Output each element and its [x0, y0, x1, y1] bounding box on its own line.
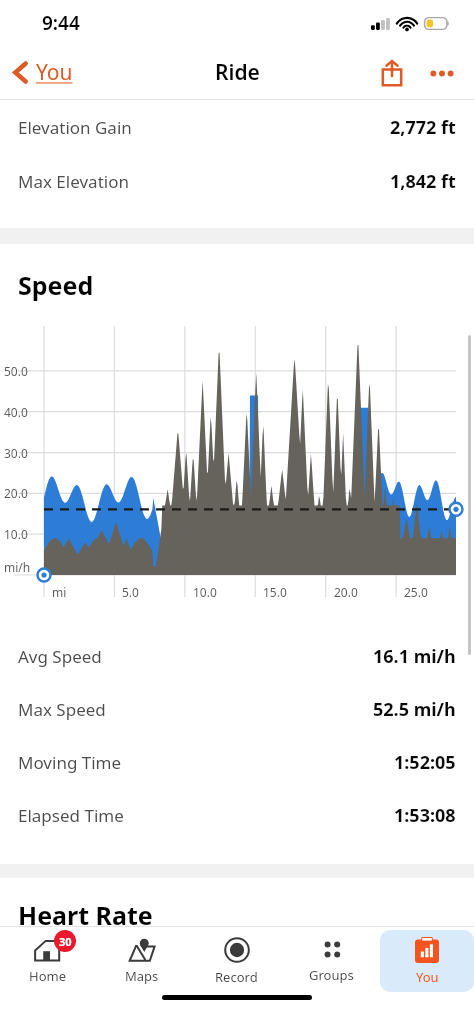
- staticText: 9:44: [42, 10, 80, 36]
- staticText: 1:53:08: [394, 803, 456, 828]
- staticText: 30.0: [4, 445, 28, 461]
- button[interactable]: Groups: [309, 939, 354, 984]
- button[interactable]: Moving Time: [0, 736, 474, 789]
- button[interactable]: Max Elevation: [0, 154, 474, 208]
- staticText: 52.5 mi/h: [373, 697, 456, 722]
- staticText: 50.0: [4, 363, 28, 379]
- staticText: 20.0: [334, 584, 358, 600]
- staticText: Elapsed Time: [18, 804, 124, 827]
- staticText: mi: [52, 584, 67, 600]
- staticText: Avg Speed: [18, 645, 102, 668]
- staticText: Moving Time: [18, 751, 122, 774]
- staticText: Groups: [309, 966, 354, 984]
- button[interactable]: 30: [29, 938, 66, 985]
- staticText: Elevation Gain: [18, 116, 132, 139]
- staticText: Max Elevation: [18, 170, 129, 193]
- staticText: Heart Rate: [18, 898, 153, 926]
- button[interactable]: Max Speed: [0, 683, 474, 736]
- staticText: Record: [215, 968, 258, 986]
- staticText: 10.0: [4, 526, 28, 542]
- staticText: 1:52:05: [394, 750, 456, 775]
- staticText: 5.0: [122, 584, 139, 600]
- button[interactable]: Share: [374, 52, 410, 94]
- button[interactable]: Elapsed Time: [0, 789, 474, 842]
- staticText: 15.0: [263, 584, 287, 600]
- staticText: mi/h: [4, 559, 31, 575]
- staticText: 2,772 ft: [390, 115, 456, 140]
- button[interactable]: You: [380, 930, 474, 992]
- button[interactable]: More options: [422, 62, 462, 85]
- staticText: Maps: [125, 967, 159, 985]
- staticText: Speed: [18, 268, 94, 302]
- staticText: 40.0: [4, 404, 28, 420]
- staticText: 25.0: [404, 584, 428, 600]
- staticText: 10.0: [193, 584, 217, 600]
- button[interactable]: Record: [215, 937, 258, 986]
- staticText: Max Speed: [18, 698, 106, 721]
- staticText: Home: [29, 967, 66, 985]
- staticText: You: [36, 58, 73, 87]
- button[interactable]: Avg Speed: [0, 630, 474, 683]
- button[interactable]: Maps: [125, 938, 159, 985]
- button[interactable]: You: [0, 50, 85, 95]
- staticText: Ride: [215, 58, 260, 87]
- staticText: 1,842 ft: [390, 169, 456, 194]
- staticText: 16.1 mi/h: [373, 644, 456, 669]
- button[interactable]: Elevation Gain: [0, 100, 474, 154]
- staticText: You: [416, 968, 439, 986]
- staticText: 20.0: [4, 485, 28, 501]
- staticText: 30: [59, 934, 72, 949]
